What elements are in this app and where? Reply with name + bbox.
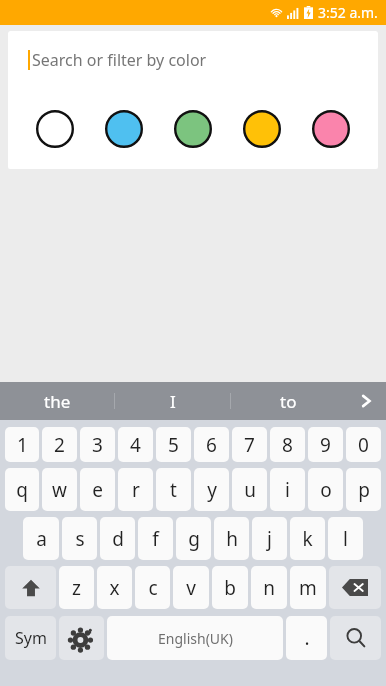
button[interactable]: q: [5, 468, 39, 511]
button[interactable]: Filter by color: [310, 108, 352, 150]
staticText: n: [263, 575, 275, 601]
staticText: .: [304, 625, 310, 651]
staticText: 0: [358, 432, 369, 458]
button[interactable]: Settings: [59, 616, 104, 660]
button[interactable]: n: [251, 566, 287, 609]
staticText: b: [224, 575, 236, 601]
staticText: t: [170, 477, 177, 503]
button[interactable]: t: [156, 468, 191, 511]
staticText: x: [109, 575, 120, 601]
button[interactable]: a: [23, 517, 59, 560]
button[interactable]: Search: [330, 616, 381, 660]
staticText: I: [170, 390, 176, 413]
button[interactable]: i: [270, 468, 305, 511]
staticText: m: [299, 575, 317, 601]
staticText: i: [285, 477, 290, 503]
staticText: q: [16, 477, 28, 503]
staticText: z: [72, 575, 81, 601]
button[interactable]: 7: [232, 427, 267, 462]
button[interactable]: e: [80, 468, 115, 511]
button[interactable]: d: [100, 517, 135, 560]
button[interactable]: x: [97, 566, 132, 609]
button[interactable]: p: [346, 468, 381, 511]
button[interactable]: o: [308, 468, 343, 511]
button[interactable]: 4: [118, 427, 153, 462]
button[interactable]: h: [214, 517, 249, 560]
button[interactable]: English(UK): [107, 616, 283, 660]
button[interactable]: 5: [156, 427, 191, 462]
staticText: 3:52 a.m.: [318, 3, 378, 22]
button[interactable]: f: [138, 517, 173, 560]
button[interactable]: Filter by color: [241, 108, 283, 150]
button[interactable]: c: [135, 566, 170, 609]
button[interactable]: I: [115, 382, 230, 420]
button[interactable]: v: [173, 566, 209, 609]
staticText: v: [186, 575, 196, 601]
button[interactable]: 9: [308, 427, 343, 462]
button[interactable]: g: [176, 517, 211, 560]
button[interactable]: r: [118, 468, 153, 511]
staticText: c: [148, 575, 158, 601]
staticText: 1: [17, 432, 28, 458]
button[interactable]: s: [62, 517, 97, 560]
staticText: 2: [54, 432, 65, 458]
button[interactable]: z: [59, 566, 94, 609]
staticText: 6: [206, 432, 217, 458]
staticText: y: [207, 477, 217, 503]
button[interactable]: Backspace: [329, 566, 381, 609]
button[interactable]: Sym: [5, 616, 56, 660]
staticText: h: [226, 526, 238, 552]
staticText: k: [302, 526, 313, 552]
staticText: 4: [130, 432, 141, 458]
button[interactable]: Shift: [5, 566, 56, 609]
button[interactable]: m: [290, 566, 326, 609]
staticText: 7: [244, 432, 255, 458]
staticText: to: [280, 390, 297, 413]
button[interactable]: k: [290, 517, 325, 560]
staticText: 9: [320, 432, 331, 458]
staticText: Search or filter by color: [32, 49, 207, 71]
staticText: a: [36, 526, 47, 552]
button[interactable]: u: [232, 468, 267, 511]
staticText: English(UK): [158, 629, 233, 648]
button[interactable]: y: [194, 468, 229, 511]
button[interactable]: Filter by color: [103, 108, 145, 150]
staticText: l: [343, 526, 348, 552]
button[interactable]: 6: [194, 427, 229, 462]
staticText: 8: [282, 432, 293, 458]
staticText: 3: [92, 432, 103, 458]
staticText: d: [112, 526, 124, 552]
staticText: o: [320, 477, 332, 503]
staticText: f: [152, 526, 159, 552]
button[interactable]: b: [212, 566, 248, 609]
button[interactable]: 2: [42, 427, 77, 462]
button[interactable]: to: [231, 382, 346, 420]
staticText: u: [244, 477, 256, 503]
button[interactable]: l: [328, 517, 363, 560]
button[interactable]: 1: [5, 427, 39, 462]
button[interactable]: .: [286, 616, 327, 660]
staticText: the: [44, 390, 71, 413]
staticText: Sym: [15, 627, 47, 649]
button[interactable]: Filter by color: [34, 108, 76, 150]
staticText: j: [267, 526, 272, 552]
button[interactable]: Filter by color: [172, 108, 214, 150]
staticText: g: [188, 526, 200, 552]
button[interactable]: 0: [346, 427, 381, 462]
staticText: w: [52, 477, 67, 503]
button[interactable]: More suggestions: [346, 382, 386, 420]
staticText: r: [132, 477, 140, 503]
staticText: 5: [168, 432, 179, 458]
button[interactable]: Search or filter by color: [8, 31, 378, 89]
button[interactable]: j: [252, 517, 287, 560]
staticText: s: [75, 526, 85, 552]
button[interactable]: 8: [270, 427, 305, 462]
button[interactable]: the: [0, 382, 114, 420]
staticText: p: [358, 477, 370, 503]
button[interactable]: w: [42, 468, 77, 511]
button[interactable]: 3: [80, 427, 115, 462]
staticText: e: [92, 477, 103, 503]
